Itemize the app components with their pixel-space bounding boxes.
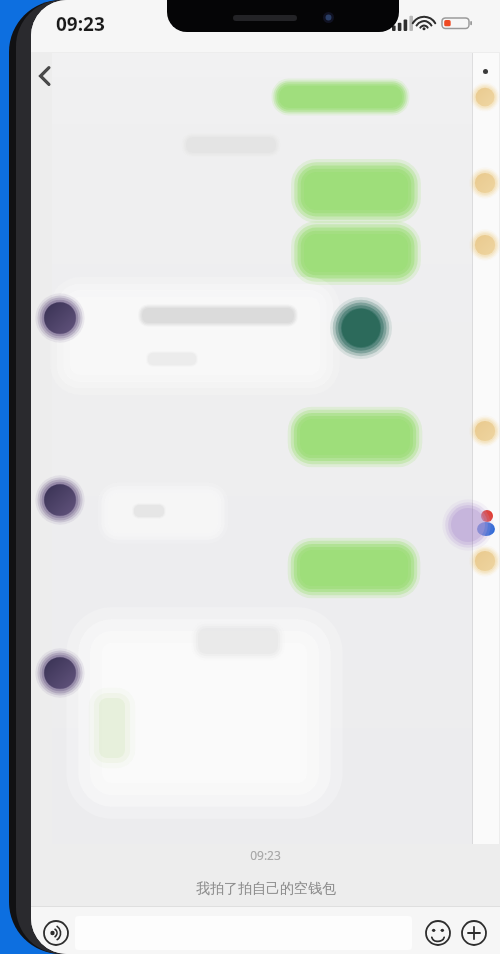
staticText: 我拍了拍自己的空钱包 <box>196 880 336 898</box>
staticText: 09:23 <box>56 11 105 37</box>
button[interactable]: More <box>456 915 492 951</box>
button[interactable]: Back <box>31 56 59 96</box>
button[interactable]: Voice input <box>37 914 75 952</box>
staticText: 09:23 <box>250 847 281 863</box>
button[interactable]: Emoji <box>420 915 456 951</box>
